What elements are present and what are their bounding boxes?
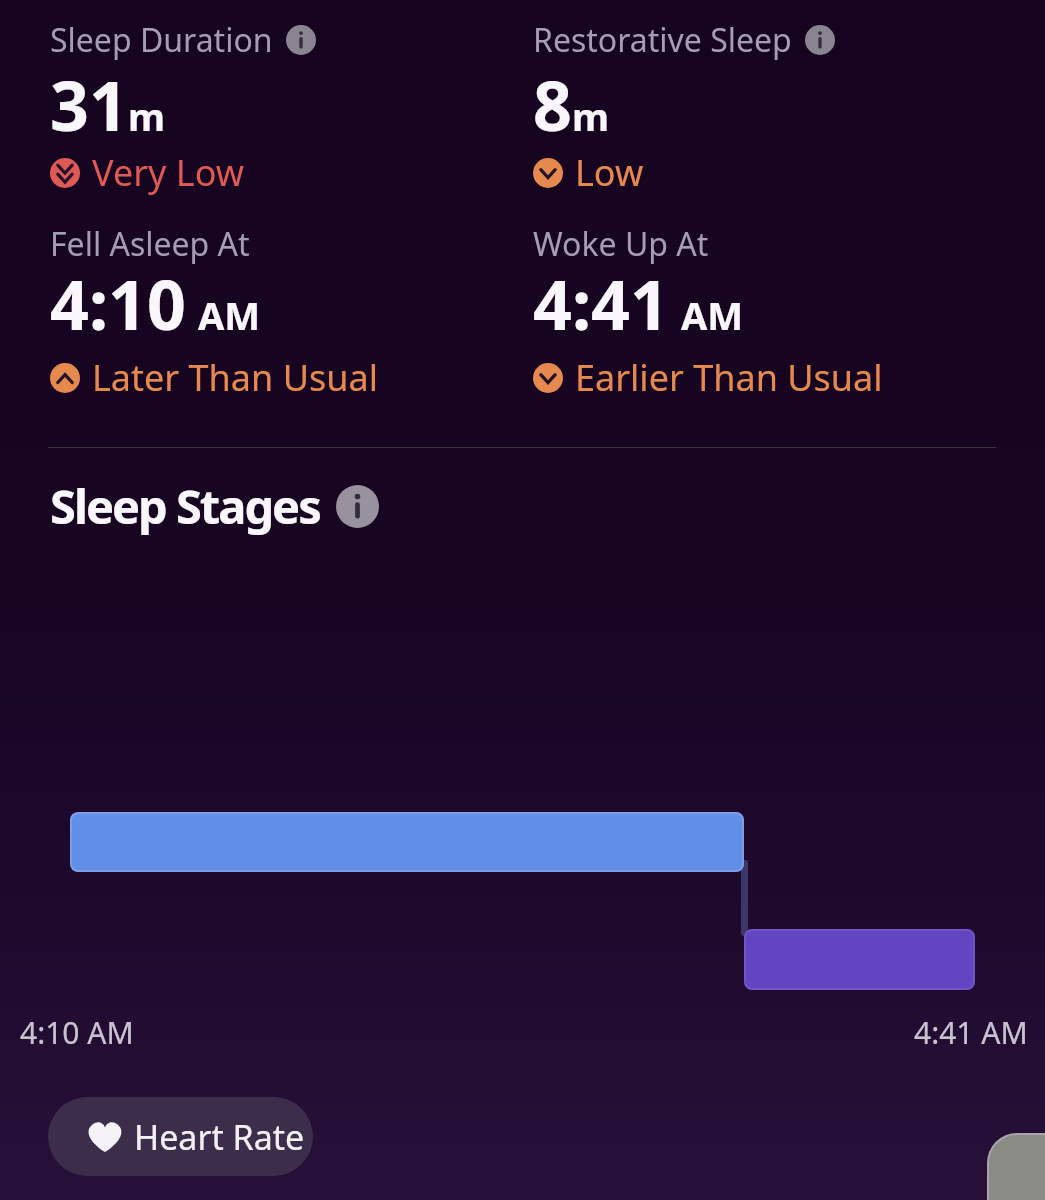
- staticText: Very Low: [92, 148, 244, 197]
- staticText: 31: [50, 58, 128, 151]
- staticText: AM: [198, 289, 261, 341]
- staticText: Restorative Sleep: [533, 18, 792, 62]
- staticText: AM: [681, 289, 744, 341]
- button[interactable]: Earlier Than Usual: [533, 353, 883, 402]
- staticText: 8: [533, 58, 572, 151]
- staticText: Sleep Duration: [50, 18, 273, 62]
- staticText: Woke Up At: [533, 222, 709, 266]
- button[interactable]: [336, 485, 379, 528]
- staticText: m: [128, 90, 166, 142]
- staticText: 4:41 AM: [914, 1012, 1028, 1053]
- button[interactable]: Very Low: [50, 148, 244, 197]
- button[interactable]: Later Than Usual: [50, 353, 378, 402]
- button[interactable]: Low: [533, 148, 644, 197]
- staticText: Earlier Than Usual: [575, 353, 883, 402]
- staticText: Sleep Stages: [50, 474, 320, 538]
- staticText: 4:10 AM: [20, 1012, 134, 1053]
- button[interactable]: [286, 25, 316, 55]
- staticText: 4:10: [50, 257, 186, 350]
- staticText: Heart Rate: [134, 1114, 305, 1160]
- staticText: m: [572, 90, 610, 142]
- staticText: Fell Asleep At: [50, 222, 250, 266]
- staticText: Low: [575, 148, 644, 197]
- button[interactable]: [987, 1133, 1045, 1200]
- button[interactable]: Heart Rate: [48, 1097, 313, 1176]
- staticText: 4:41: [533, 257, 669, 350]
- button[interactable]: [805, 25, 835, 55]
- staticText: Later Than Usual: [92, 353, 378, 402]
